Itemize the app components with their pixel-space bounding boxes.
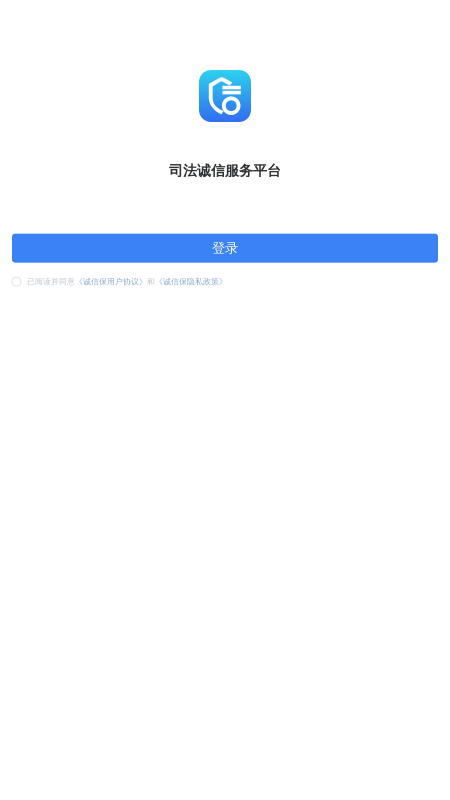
staticText: 司法诚信服务平台: [169, 162, 281, 180]
staticText: 《诚信保隐私政策》: [155, 277, 227, 286]
button[interactable]: 《诚信保用户协议》: [75, 277, 147, 286]
staticText: 《诚信保用户协议》: [75, 277, 147, 286]
staticText: 登录: [212, 240, 238, 256]
staticText: 和: [147, 277, 155, 286]
button[interactable]: 《诚信保隐私政策》: [155, 277, 227, 286]
staticText: 已阅读并同意: [27, 277, 75, 286]
button[interactable]: 登录: [12, 234, 438, 263]
button[interactable]: Agree to the user agreement and privacy …: [12, 277, 21, 286]
